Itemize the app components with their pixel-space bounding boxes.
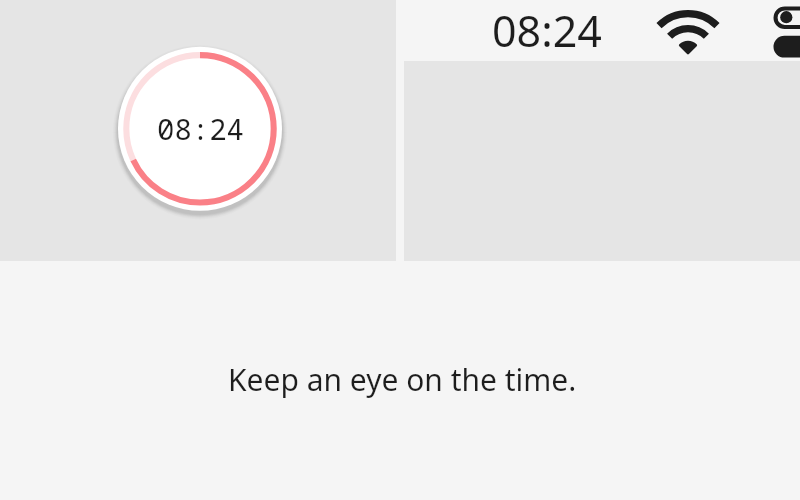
button[interactable]: Countdown timer preview	[0, 0, 396, 261]
button[interactable]: Wi-Fi	[653, 6, 723, 58]
button[interactable]: Status bar preview	[404, 0, 800, 261]
button[interactable]: Battery	[769, 0, 800, 61]
staticText: 08:24	[157, 109, 245, 148]
staticText: Keep an eye on the time.	[228, 359, 577, 400]
button[interactable]: 08:24	[492, 1, 602, 60]
button[interactable]: Timer 08:24, tap to pause	[118, 47, 282, 211]
